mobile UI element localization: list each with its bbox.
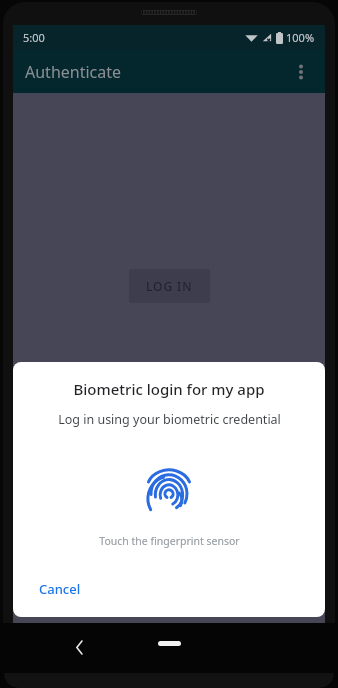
staticText: Biometric login for my app [73,379,265,399]
button[interactable]: More options [281,52,321,92]
staticText: LOG IN [146,278,193,294]
button[interactable]: Home [158,641,181,646]
button[interactable]: LOG IN [129,269,210,303]
staticText: Log in using your biometric credential [58,411,281,428]
staticText: Touch the fingerprint sensor [99,534,240,548]
staticText: 100% [286,30,315,45]
staticText: Cancel [39,580,81,598]
staticText: 5:00 [23,30,45,45]
staticText: Authenticate [25,61,122,83]
button[interactable]: Cancel [29,573,91,605]
button[interactable]: Back [62,630,96,664]
